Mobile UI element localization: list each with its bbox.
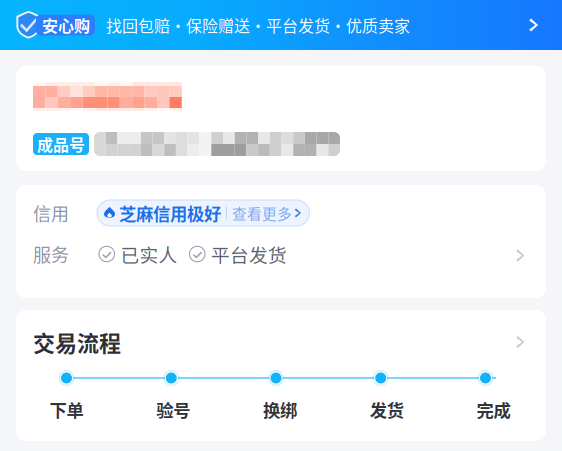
staticText: 信用: [33, 200, 69, 226]
staticText: 验号: [156, 397, 190, 422]
staticText: 芝麻信用极好: [119, 200, 221, 226]
staticText: 已实人: [120, 240, 177, 267]
staticText: 查看更多: [232, 202, 292, 224]
staticText: 完成: [476, 397, 510, 422]
button[interactable]: 芝麻信用极好: [97, 200, 309, 226]
button[interactable]: 交易流程: [16, 324, 546, 360]
button[interactable]: 安心购: [0, 0, 562, 50]
staticText: 发货: [370, 397, 404, 422]
staticText: 平台发货: [211, 240, 287, 267]
staticText: 下单: [49, 397, 83, 422]
staticText: 服务: [33, 241, 69, 267]
staticText: 找回包赔·保险赠送·平台发货·优质卖家: [106, 13, 410, 37]
staticText: 成品号: [37, 132, 85, 156]
staticText: 换绑: [263, 397, 297, 422]
staticText: 安心购: [42, 13, 90, 37]
staticText: 交易流程: [33, 326, 121, 358]
button[interactable]: 服务: [16, 237, 546, 271]
